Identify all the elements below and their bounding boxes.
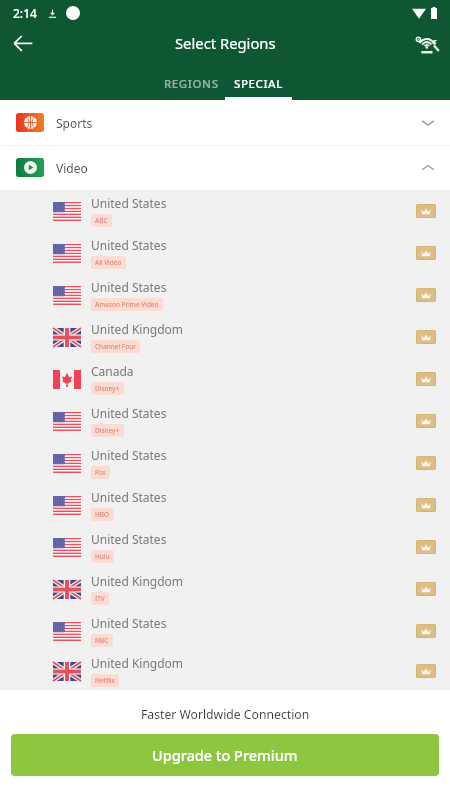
button[interactable]: REGIONS	[158, 68, 225, 100]
button[interactable]: United States	[0, 526, 450, 568]
button[interactable]: United Kingdom	[0, 652, 450, 690]
button[interactable]: Premium	[416, 582, 436, 596]
button[interactable]: United States	[0, 484, 450, 526]
staticText: Disney+	[95, 384, 120, 393]
staticText: 2:14	[13, 5, 37, 21]
button[interactable]: Premium	[416, 664, 436, 678]
staticText: United States	[91, 405, 167, 421]
button[interactable]: United States	[0, 400, 450, 442]
staticText: United States	[91, 447, 167, 463]
button[interactable]: United States	[0, 232, 450, 274]
staticText: REGIONS	[164, 76, 219, 92]
button[interactable]: Network settings	[405, 21, 449, 65]
staticText: United States	[91, 531, 167, 547]
button[interactable]: United States	[0, 190, 450, 232]
staticText: Canada	[91, 363, 134, 379]
staticText: ITV	[95, 594, 105, 603]
staticText: United Kingdom	[91, 573, 184, 589]
staticText: United Kingdom	[91, 655, 184, 671]
button[interactable]: Premium	[416, 498, 436, 512]
staticText: NBC	[95, 636, 109, 645]
staticText: Upgrade to Premium	[152, 745, 298, 765]
staticText: Video	[56, 160, 88, 176]
staticText: United States	[91, 615, 167, 631]
button[interactable]: Premium	[416, 330, 436, 344]
button[interactable]: Canada	[0, 358, 450, 400]
button[interactable]: Premium	[416, 204, 436, 218]
button[interactable]: United States	[0, 442, 450, 484]
button[interactable]: United Kingdom	[0, 316, 450, 358]
button[interactable]: Back	[1, 21, 45, 65]
button[interactable]: Premium	[416, 246, 436, 260]
button[interactable]: Premium	[416, 540, 436, 554]
staticText: Select Regions	[175, 33, 276, 53]
staticText: Channel Four	[95, 342, 136, 351]
staticText: Amazon Prime Video	[95, 300, 159, 309]
staticText: Sports	[56, 115, 93, 131]
staticText: United States	[91, 489, 167, 505]
staticText: HBO	[95, 510, 110, 519]
button[interactable]: Premium	[416, 372, 436, 386]
staticText: United States	[91, 237, 167, 253]
button[interactable]: United States	[0, 610, 450, 652]
button[interactable]: Video	[0, 145, 450, 190]
button[interactable]: Upgrade to Premium	[11, 734, 439, 776]
button[interactable]: Premium	[416, 624, 436, 638]
staticText: United States	[91, 195, 167, 211]
button[interactable]: Premium	[416, 456, 436, 470]
button[interactable]: Premium	[416, 288, 436, 302]
staticText: All Video	[95, 258, 122, 267]
staticText: Netflix	[95, 676, 115, 685]
staticText: Faster Worldwide Connection	[141, 706, 310, 723]
staticText: Disney+	[95, 426, 120, 435]
staticText: Fox	[95, 468, 106, 477]
staticText: ABC	[95, 216, 108, 225]
button[interactable]: United States	[0, 274, 450, 316]
button[interactable]: Premium	[416, 414, 436, 428]
staticText: Hulu	[95, 552, 110, 561]
button[interactable]: United Kingdom	[0, 568, 450, 610]
staticText: United Kingdom	[91, 321, 184, 337]
staticText: SPECIAL	[234, 76, 283, 92]
button[interactable]: SPECIAL	[225, 68, 292, 100]
button[interactable]: Sports	[0, 100, 450, 145]
staticText: United States	[91, 279, 167, 295]
